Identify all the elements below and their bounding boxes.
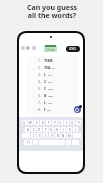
button[interactable]: Z (31, 133, 36, 138)
button[interactable]: F (43, 127, 48, 132)
button[interactable]: 6. (38, 92, 70, 99)
button[interactable]: D (37, 127, 42, 132)
staticText: Can you guess all the words? (27, 3, 77, 20)
staticText: 8. (38, 107, 41, 112)
button[interactable]: M (67, 133, 72, 138)
staticText: G (50, 128, 53, 132)
staticText: LEVEL (69, 47, 77, 51)
staticText: T (48, 121, 50, 125)
staticText: C (44, 86, 47, 91)
button[interactable]: 3. (38, 71, 70, 78)
staticText: V (51, 134, 53, 138)
staticText: 2. (38, 65, 41, 70)
staticText: 2 finds (46, 48, 55, 52)
button[interactable]: P (76, 120, 81, 125)
staticText: Z (33, 134, 35, 138)
button[interactable]: . (66, 140, 71, 145)
staticText: I (44, 107, 46, 112)
button[interactable]: , (33, 140, 38, 145)
staticText: K (69, 128, 71, 132)
button[interactable]: Q (22, 120, 27, 125)
staticText: H (56, 128, 59, 132)
button[interactable]: B (55, 133, 60, 138)
button[interactable]: H (55, 127, 60, 132)
button[interactable]: V (49, 133, 54, 138)
staticText: Q (23, 121, 26, 125)
staticText: S (33, 128, 35, 132)
button[interactable]: Y (52, 120, 57, 125)
staticText: D (38, 128, 41, 132)
button[interactable]: X (37, 133, 42, 138)
button[interactable]: 7. (38, 99, 70, 106)
button[interactable]: I (64, 120, 69, 125)
staticText: X (39, 134, 41, 138)
staticText: 1. (38, 58, 41, 63)
button[interactable]: Hint (26, 46, 30, 50)
button[interactable]: Help (32, 46, 36, 50)
button[interactable]: G (49, 127, 54, 132)
staticText: 5. (38, 86, 41, 91)
staticText: O (71, 121, 74, 125)
staticText: C (45, 134, 47, 138)
staticText: C (44, 79, 47, 84)
button[interactable]: C (43, 133, 48, 138)
staticText: I (66, 121, 67, 125)
button[interactable]: 8. (38, 106, 70, 113)
button[interactable]: T (46, 120, 51, 125)
staticText: L (44, 72, 47, 77)
button[interactable]: 4. (38, 78, 70, 85)
button[interactable]: A (25, 127, 30, 132)
staticText: ?1 (27, 141, 30, 145)
button[interactable]: U (58, 120, 63, 125)
staticText: N (62, 134, 65, 138)
button[interactable]: E (34, 120, 39, 125)
button[interactable]: R (40, 120, 45, 125)
staticText: , (35, 141, 36, 145)
button[interactable]: 2 finds (44, 45, 57, 52)
button[interactable]: LEVEL (66, 46, 80, 52)
staticText: . (68, 141, 69, 145)
staticText: Y (54, 121, 56, 125)
staticText: J (63, 128, 64, 132)
button[interactable]: J (61, 127, 66, 132)
staticText: U (59, 121, 62, 125)
button[interactable]: Shuffle letters (74, 106, 81, 113)
button[interactable]: K (67, 127, 72, 132)
staticText: B (44, 93, 47, 98)
staticText: 4. (38, 79, 41, 84)
staticText: L (44, 100, 47, 105)
staticText: TIME (44, 58, 53, 63)
staticText: A (27, 128, 29, 132)
button[interactable]: 5. (38, 85, 70, 92)
staticText: F (45, 128, 47, 132)
staticText: 3. (38, 72, 41, 77)
staticText: P (78, 121, 80, 125)
staticText: 7. (38, 100, 41, 105)
staticText: B (57, 134, 59, 138)
staticText: W (29, 121, 32, 125)
button[interactable]: 1. (38, 57, 70, 64)
button[interactable]: ?1 (24, 140, 32, 145)
staticText: 6. (38, 93, 41, 98)
button[interactable]: L (73, 127, 78, 132)
button[interactable]: Settings (21, 46, 25, 50)
staticText: TEA (44, 65, 51, 70)
staticText: E (36, 121, 38, 125)
staticText: M (68, 134, 71, 138)
button[interactable]: N (61, 133, 66, 138)
button[interactable]: S (31, 127, 36, 132)
button[interactable]: W (28, 120, 33, 125)
staticText: R (42, 121, 44, 125)
staticText: L (75, 128, 77, 132)
button[interactable]: 2. (38, 64, 70, 71)
button[interactable]: O (70, 120, 75, 125)
